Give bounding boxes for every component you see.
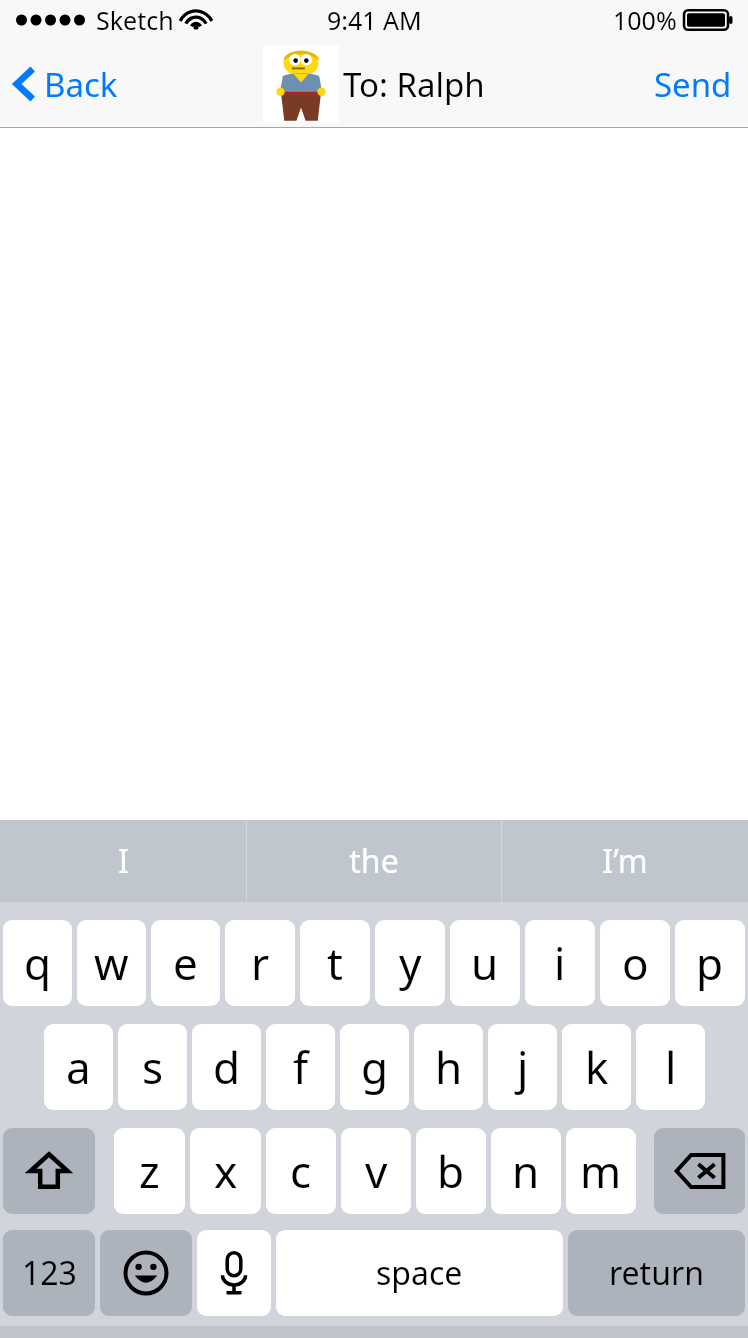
button[interactable]: space bbox=[276, 1230, 563, 1316]
staticText: q bbox=[24, 933, 52, 993]
staticText: v bbox=[365, 1141, 388, 1201]
staticText: e bbox=[173, 933, 198, 993]
button[interactable]: return bbox=[568, 1230, 745, 1316]
button[interactable]: b bbox=[416, 1128, 486, 1214]
button[interactable]: f bbox=[266, 1024, 335, 1110]
button[interactable]: I’m bbox=[502, 820, 748, 902]
staticText: m bbox=[580, 1141, 622, 1201]
staticText: z bbox=[139, 1141, 160, 1201]
staticText: g bbox=[361, 1037, 389, 1097]
button[interactable]: p bbox=[675, 920, 745, 1006]
staticText: y bbox=[399, 933, 422, 993]
button[interactable]: Dictation bbox=[197, 1230, 271, 1316]
button[interactable]: I bbox=[0, 820, 246, 902]
button[interactable]: v bbox=[341, 1128, 411, 1214]
staticText: k bbox=[585, 1037, 609, 1097]
staticText: h bbox=[435, 1037, 463, 1097]
staticText: i bbox=[554, 933, 566, 993]
button[interactable]: Shift bbox=[3, 1128, 95, 1214]
staticText: u bbox=[471, 933, 499, 993]
button[interactable]: j bbox=[488, 1024, 557, 1110]
button[interactable]: k bbox=[562, 1024, 631, 1110]
button[interactable]: Send bbox=[638, 40, 748, 128]
staticText: c bbox=[290, 1141, 312, 1201]
button[interactable]: h bbox=[414, 1024, 483, 1110]
button[interactable]: o bbox=[600, 920, 670, 1006]
staticText: n bbox=[512, 1141, 540, 1201]
staticText: p bbox=[696, 933, 724, 993]
staticText: the bbox=[349, 839, 399, 883]
button[interactable]: c bbox=[266, 1128, 336, 1214]
button[interactable]: w bbox=[77, 920, 146, 1006]
staticText: o bbox=[622, 933, 649, 993]
staticText: a bbox=[66, 1037, 91, 1097]
button[interactable]: d bbox=[192, 1024, 261, 1110]
staticText: t bbox=[327, 933, 343, 993]
button[interactable]: x bbox=[190, 1128, 261, 1214]
staticText: b bbox=[437, 1141, 465, 1201]
staticText: I bbox=[118, 839, 129, 883]
staticText: Sketch bbox=[96, 3, 174, 37]
button[interactable]: z bbox=[114, 1128, 185, 1214]
button[interactable]: q bbox=[3, 920, 72, 1006]
button[interactable]: m bbox=[566, 1128, 636, 1214]
button[interactable]: Emoji bbox=[100, 1230, 192, 1316]
staticText: w bbox=[94, 933, 129, 993]
staticText: f bbox=[293, 1037, 309, 1097]
staticText: Back bbox=[44, 62, 118, 107]
staticText: s bbox=[142, 1037, 164, 1097]
button[interactable]: y bbox=[375, 920, 445, 1006]
button[interactable]: a bbox=[44, 1024, 113, 1110]
button[interactable]: Backspace bbox=[654, 1128, 745, 1214]
staticText: j bbox=[517, 1037, 529, 1097]
button[interactable]: r bbox=[225, 920, 295, 1006]
button[interactable]: Back bbox=[0, 40, 130, 128]
staticText: space bbox=[376, 1251, 463, 1295]
button[interactable]: i bbox=[525, 920, 595, 1006]
staticText: 9:41 AM bbox=[327, 3, 422, 37]
staticText: To: Ralph bbox=[343, 62, 485, 107]
button[interactable]: e bbox=[151, 920, 220, 1006]
button[interactable]: t bbox=[300, 920, 370, 1006]
button[interactable]: u bbox=[450, 920, 520, 1006]
staticText: r bbox=[251, 933, 270, 993]
staticText: x bbox=[214, 1141, 238, 1201]
staticText: Send bbox=[654, 62, 732, 107]
staticText: return bbox=[609, 1251, 704, 1295]
staticText: I’m bbox=[602, 839, 648, 883]
button[interactable]: s bbox=[118, 1024, 187, 1110]
staticText: l bbox=[665, 1037, 677, 1097]
staticText: d bbox=[213, 1037, 241, 1097]
button[interactable]: n bbox=[491, 1128, 561, 1214]
staticText: 100% bbox=[613, 3, 677, 37]
button[interactable]: l bbox=[636, 1024, 705, 1110]
button[interactable]: the bbox=[247, 820, 501, 902]
button[interactable]: 123 bbox=[3, 1230, 95, 1316]
staticText: 123 bbox=[22, 1251, 77, 1295]
button[interactable]: g bbox=[340, 1024, 409, 1110]
